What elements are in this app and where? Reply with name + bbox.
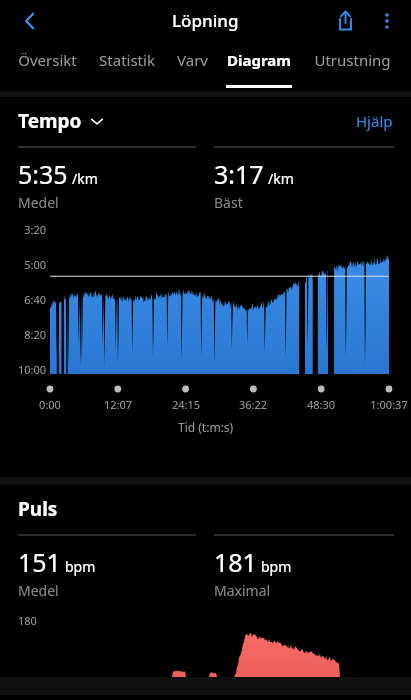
- staticText: 1:00:37: [359, 397, 411, 412]
- staticText: bpm: [65, 557, 96, 576]
- staticText: Tempo: [18, 108, 82, 134]
- staticText: Tid (t:m:s): [178, 419, 234, 435]
- staticText: Varv: [177, 50, 208, 70]
- button[interactable]: Tempo: [18, 108, 104, 134]
- staticText: Hjälp: [356, 111, 393, 131]
- button[interactable]: Översikt: [6, 41, 88, 91]
- button[interactable]: Puls: [18, 496, 58, 522]
- staticText: /km: [72, 169, 98, 188]
- staticText: 0:00: [20, 397, 80, 412]
- staticText: 151: [18, 545, 61, 579]
- button[interactable]: Back: [10, 1, 50, 41]
- staticText: 24:15: [156, 397, 216, 412]
- staticText: 8:20: [0, 327, 46, 342]
- staticText: Löpning: [172, 9, 239, 32]
- staticText: Översikt: [18, 50, 77, 70]
- staticText: 3:17: [214, 157, 264, 191]
- button[interactable]: Utrustning: [300, 41, 405, 91]
- staticText: /km: [268, 169, 294, 188]
- staticText: bpm: [261, 557, 292, 576]
- staticText: 12:07: [88, 397, 148, 412]
- staticText: 6:40: [0, 292, 46, 307]
- staticText: 10:00: [0, 362, 46, 377]
- staticText: 36:22: [223, 397, 283, 412]
- staticText: 3:20: [0, 222, 46, 237]
- staticText: 180: [18, 613, 37, 628]
- staticText: 5:00: [0, 257, 46, 272]
- button[interactable]: Varv: [166, 41, 218, 91]
- button[interactable]: Statistik: [88, 41, 166, 91]
- button[interactable]: Diagram: [218, 41, 300, 91]
- staticText: Statistik: [99, 50, 155, 70]
- staticText: Maximal: [214, 581, 271, 600]
- staticText: Puls: [18, 496, 58, 522]
- staticText: Medel: [18, 193, 59, 212]
- button[interactable]: More options: [367, 1, 407, 41]
- button[interactable]: Hjälp: [356, 111, 393, 131]
- staticText: 181: [214, 545, 257, 579]
- staticText: Medel: [18, 581, 59, 600]
- staticText: 48:30: [291, 397, 351, 412]
- staticText: Utrustning: [314, 50, 391, 70]
- staticText: Diagram: [227, 50, 291, 70]
- button[interactable]: Share: [323, 0, 367, 41]
- staticText: 5:35: [18, 157, 68, 191]
- staticText: Bäst: [214, 193, 243, 212]
